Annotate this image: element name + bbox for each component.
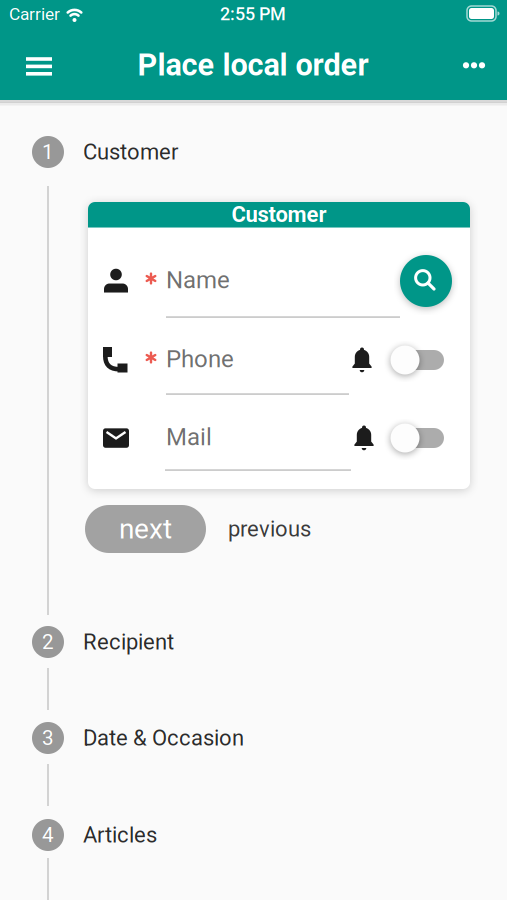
button[interactable]	[15, 42, 63, 90]
button[interactable]	[385, 340, 449, 380]
button[interactable]: 3	[32, 710, 475, 766]
button[interactable]	[450, 41, 498, 89]
staticText: Customer	[231, 202, 326, 227]
staticText: 3	[42, 726, 54, 750]
staticText: Carrier	[9, 4, 60, 24]
staticText: Date & Occasion	[83, 725, 244, 751]
button[interactable]: 2	[32, 614, 475, 670]
staticText: Customer	[83, 139, 178, 165]
staticText: 4	[42, 823, 54, 847]
staticText: Name	[166, 266, 230, 294]
button[interactable]: 1	[32, 124, 475, 180]
staticText: next	[119, 513, 172, 545]
staticText: 1	[42, 140, 54, 164]
button[interactable]: 4	[32, 807, 475, 863]
button[interactable]	[400, 255, 452, 307]
button[interactable]: next	[85, 505, 206, 553]
staticText: Articles	[83, 822, 157, 848]
staticText: Place local order	[137, 47, 368, 83]
staticText: Phone	[166, 345, 234, 373]
staticText: Mail	[166, 423, 212, 451]
button[interactable]: previous	[228, 505, 338, 553]
staticText: Recipient	[83, 629, 174, 655]
staticText: 2	[42, 630, 54, 654]
button[interactable]	[385, 418, 449, 458]
staticText: previous	[228, 516, 311, 542]
staticText: 2:55 PM	[220, 3, 286, 25]
